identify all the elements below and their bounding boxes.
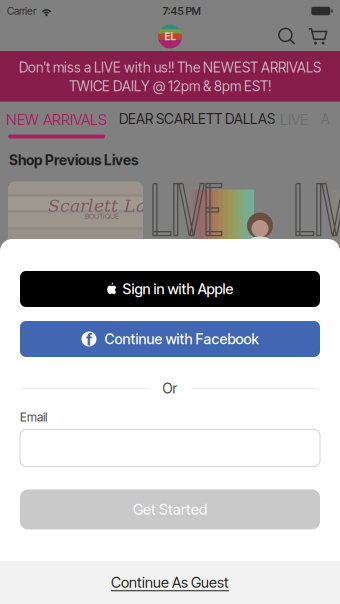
staticText: Scarlett Lane [48,196,167,216]
staticText: Email [20,410,47,424]
button[interactable]: Previous live video [294,182,340,286]
staticText: TWICE DAILY @ 12pm & 8pm EST! [69,78,271,95]
staticText: BOUTIQUE [85,212,119,220]
button[interactable]: Continue As Guest [0,561,340,604]
button[interactable]: f [20,321,320,357]
staticText: Don't miss a LIVE with us!! The NEWEST A… [19,59,321,76]
staticText: Or [162,380,177,397]
staticText: A [321,111,330,127]
button[interactable]: Shopping cart [308,26,329,46]
staticText: Shop Previous Lives [9,151,138,169]
button[interactable]: Home [158,24,182,48]
staticText: f [86,330,92,349]
staticText: LIVE [280,111,308,129]
staticText: Sign in with Apple [122,280,233,298]
button[interactable]: Previous live video [151,182,286,286]
button[interactable]: LIVE [275,102,308,129]
staticText: 7:45 PM [162,4,200,17]
button[interactable]: Previous live video [8,182,143,286]
button[interactable]: NEW ARRIVALS [8,102,105,139]
button[interactable]: DEAR SCARLETT DALLAS [105,102,275,127]
staticText: Get Started [133,501,207,518]
staticText: Continue with Facebook [104,330,258,348]
button[interactable]: Search [277,26,297,46]
button[interactable]: Get Started [20,489,320,529]
staticText: EL [164,30,175,43]
staticText: DEAR SCARLETT DALLAS [119,111,275,127]
staticText: Carrier [7,5,36,17]
button[interactable]: Sign in with Apple [20,271,320,307]
staticText: NEW ARRIVALS [6,111,107,129]
staticText: Continue As Guest [111,574,229,591]
